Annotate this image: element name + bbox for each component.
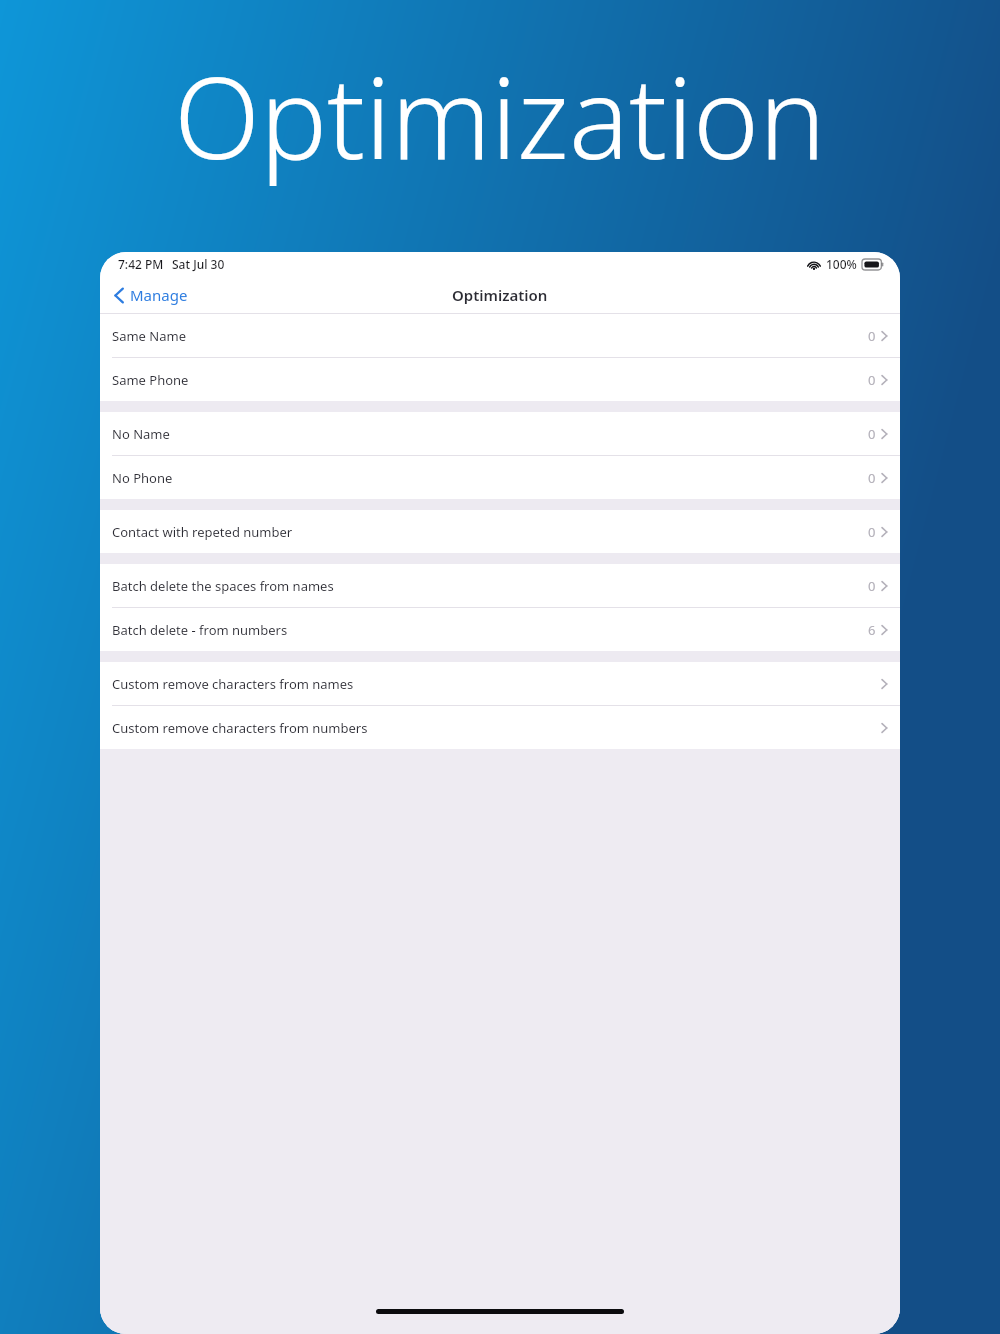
button[interactable]: Contact with repeted number (100, 510, 900, 553)
staticText: 0 (868, 327, 876, 345)
staticText: 6 (868, 621, 876, 639)
staticText: No Phone (112, 469, 173, 487)
staticText: Batch delete the spaces from names (112, 577, 334, 595)
staticText: 7:42 PM (118, 256, 164, 272)
staticText: Manage (130, 285, 188, 305)
button[interactable]: Same Name (100, 314, 900, 357)
staticText: Same Name (112, 327, 186, 345)
staticText: Batch delete - from numbers (112, 621, 288, 639)
button[interactable]: No Name (100, 412, 900, 455)
staticText: 0 (868, 523, 876, 541)
staticText: 0 (868, 577, 876, 595)
button[interactable]: Batch delete the spaces from names (100, 564, 900, 607)
button[interactable]: No Phone (100, 456, 900, 499)
staticText: Sat Jul 30 (172, 256, 225, 272)
staticText: 0 (868, 425, 876, 443)
button[interactable]: Same Phone (100, 358, 900, 401)
button[interactable]: Custom remove characters from names (100, 662, 900, 705)
button[interactable]: Batch delete - from numbers (100, 608, 900, 651)
staticText: 100% (826, 256, 857, 272)
staticText: Same Phone (112, 371, 189, 389)
staticText: Optimization (452, 285, 548, 305)
staticText: Contact with repeted number (112, 523, 293, 541)
staticText: No Name (112, 425, 170, 443)
staticText: Optimization (174, 39, 826, 192)
button[interactable]: Custom remove characters from numbers (100, 706, 900, 749)
staticText: Custom remove characters from names (112, 675, 354, 693)
staticText: Custom remove characters from numbers (112, 719, 368, 737)
staticText: 0 (868, 469, 876, 487)
staticText: 0 (868, 371, 876, 389)
button[interactable]: Manage (108, 279, 194, 311)
